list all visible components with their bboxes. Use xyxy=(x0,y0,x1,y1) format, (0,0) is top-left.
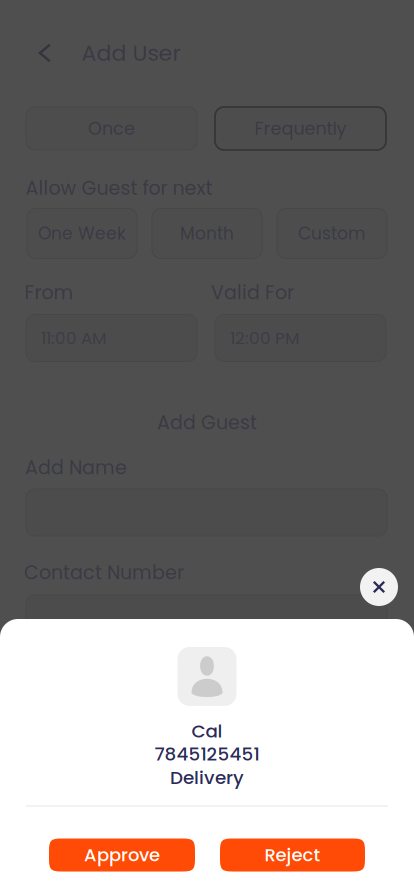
button[interactable]: Reject xyxy=(220,838,365,871)
button[interactable]: Close xyxy=(360,568,398,606)
staticText: Delivery xyxy=(170,765,244,790)
staticText: Valid For xyxy=(211,279,294,306)
staticText: 11:00 AM xyxy=(41,326,106,350)
button[interactable] xyxy=(26,595,387,642)
button[interactable]: One Week xyxy=(27,208,137,258)
staticText: Approve xyxy=(84,842,160,868)
staticText: Once xyxy=(88,116,135,141)
staticText: Custom xyxy=(298,222,366,245)
staticText: From xyxy=(24,279,73,306)
staticText: Reject xyxy=(264,842,320,868)
staticText: Add Guest xyxy=(157,409,257,436)
button[interactable]: Custom xyxy=(277,208,387,258)
staticText: Cal xyxy=(191,718,222,744)
staticText: Frequently xyxy=(254,116,346,141)
staticText: One Week xyxy=(38,222,126,245)
staticText: Allow Guest for next xyxy=(25,175,212,201)
button[interactable]: Approve xyxy=(49,838,195,871)
staticText: 12:00 PM xyxy=(230,326,299,350)
button[interactable]: Frequently xyxy=(215,107,386,150)
staticText: Month xyxy=(180,222,234,245)
button[interactable]: Back xyxy=(28,36,62,70)
staticText: 7845125451 xyxy=(154,741,259,767)
button[interactable]: Month xyxy=(152,208,262,258)
staticText: Contact Number xyxy=(24,559,184,586)
staticText: Add Name xyxy=(25,454,127,481)
staticText: Add User xyxy=(81,38,180,68)
